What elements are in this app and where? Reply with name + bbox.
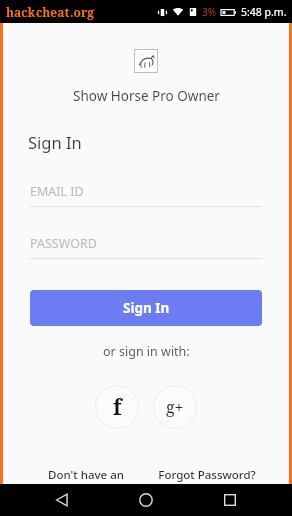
button[interactable]: Back bbox=[40, 484, 84, 516]
staticText: Sign In bbox=[28, 131, 82, 153]
button[interactable]: PASSWORD bbox=[30, 233, 262, 259]
staticText: .org bbox=[70, 4, 94, 20]
staticText: 5:48 p.m. bbox=[241, 5, 287, 19]
button[interactable]: Sign In bbox=[30, 290, 262, 326]
staticText: f bbox=[113, 393, 122, 422]
button[interactable]: Sign in with Google bbox=[153, 385, 197, 429]
button[interactable]: Forgot Password? bbox=[146, 467, 267, 483]
button[interactable]: Home bbox=[124, 484, 168, 516]
staticText: g+ bbox=[166, 396, 184, 418]
button[interactable]: Sign in with Facebook bbox=[95, 385, 139, 429]
staticText: PASSWORD bbox=[30, 235, 97, 252]
staticText: 3% bbox=[202, 5, 217, 19]
other: Show Horse Pro logo bbox=[134, 49, 158, 73]
staticText: Don't have an bbox=[48, 467, 124, 483]
staticText: hack bbox=[6, 4, 36, 20]
staticText: Show Horse Pro Owner bbox=[73, 87, 220, 105]
button[interactable]: Don't have an bbox=[25, 467, 146, 483]
button[interactable]: Recent apps bbox=[208, 484, 252, 516]
staticText: Forgot Password? bbox=[158, 467, 256, 483]
staticText: cheat bbox=[36, 4, 70, 20]
staticText: or sign in with: bbox=[103, 343, 190, 360]
button[interactable]: EMAIL ID bbox=[30, 181, 262, 207]
staticText: EMAIL ID bbox=[30, 183, 84, 200]
staticText: Sign In bbox=[123, 299, 170, 317]
